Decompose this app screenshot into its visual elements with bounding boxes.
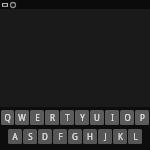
button[interactable]: U	[90, 110, 104, 125]
button[interactable]: A	[8, 129, 22, 144]
button[interactable]: E	[30, 110, 44, 125]
staticText: U	[94, 112, 100, 123]
button[interactable]: T	[60, 110, 74, 125]
button[interactable]: H	[83, 129, 97, 144]
staticText: J	[104, 131, 107, 142]
staticText: G	[72, 131, 78, 142]
button[interactable]: D	[38, 129, 52, 144]
staticText: P	[140, 112, 145, 123]
button[interactable]: R	[45, 110, 59, 125]
button[interactable]: G	[68, 129, 82, 144]
staticText: T	[65, 112, 70, 123]
staticText: F	[58, 131, 63, 142]
button[interactable]: W	[15, 110, 29, 125]
button[interactable]: K	[113, 129, 127, 144]
staticText: O	[124, 112, 131, 123]
staticText: W	[18, 112, 26, 123]
button[interactable]: O	[120, 110, 134, 125]
button[interactable]: P	[135, 110, 149, 125]
button[interactable]: F	[53, 129, 67, 144]
staticText: Q	[4, 112, 11, 123]
button[interactable]: S	[23, 129, 37, 144]
other: Notification	[2, 2, 8, 8]
button[interactable]: J	[98, 129, 112, 144]
staticText: Y	[80, 112, 85, 123]
staticText: L	[133, 131, 138, 142]
button[interactable]: L	[128, 129, 142, 144]
staticText: D	[42, 131, 48, 142]
button[interactable]: Q	[1, 110, 14, 125]
staticText: E	[35, 112, 40, 123]
other: Status	[10, 2, 16, 8]
staticText: S	[28, 131, 33, 142]
button[interactable]: Y	[75, 110, 89, 125]
staticText: K	[118, 131, 123, 142]
staticText: H	[87, 131, 93, 142]
staticText: A	[12, 131, 18, 142]
staticText: R	[50, 112, 55, 123]
button[interactable]: I	[105, 110, 119, 125]
staticText: I	[111, 112, 114, 123]
